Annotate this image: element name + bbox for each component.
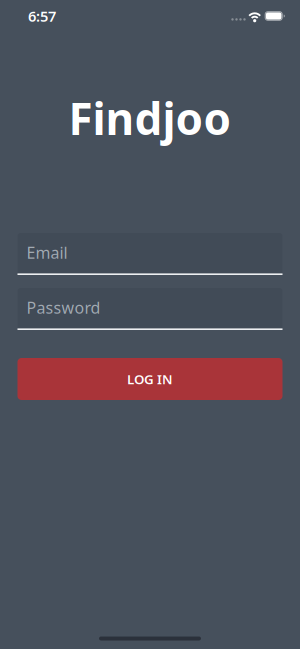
- button[interactable]: LOG IN: [17, 358, 282, 400]
- staticText: Findjoo: [68, 89, 231, 147]
- staticText: Password: [26, 297, 100, 318]
- button[interactable]: Password: [17, 288, 282, 330]
- button[interactable]: Email: [17, 233, 282, 275]
- staticText: LOG IN: [127, 370, 173, 388]
- staticText: Email: [26, 242, 67, 263]
- staticText: 6:57: [28, 6, 56, 26]
